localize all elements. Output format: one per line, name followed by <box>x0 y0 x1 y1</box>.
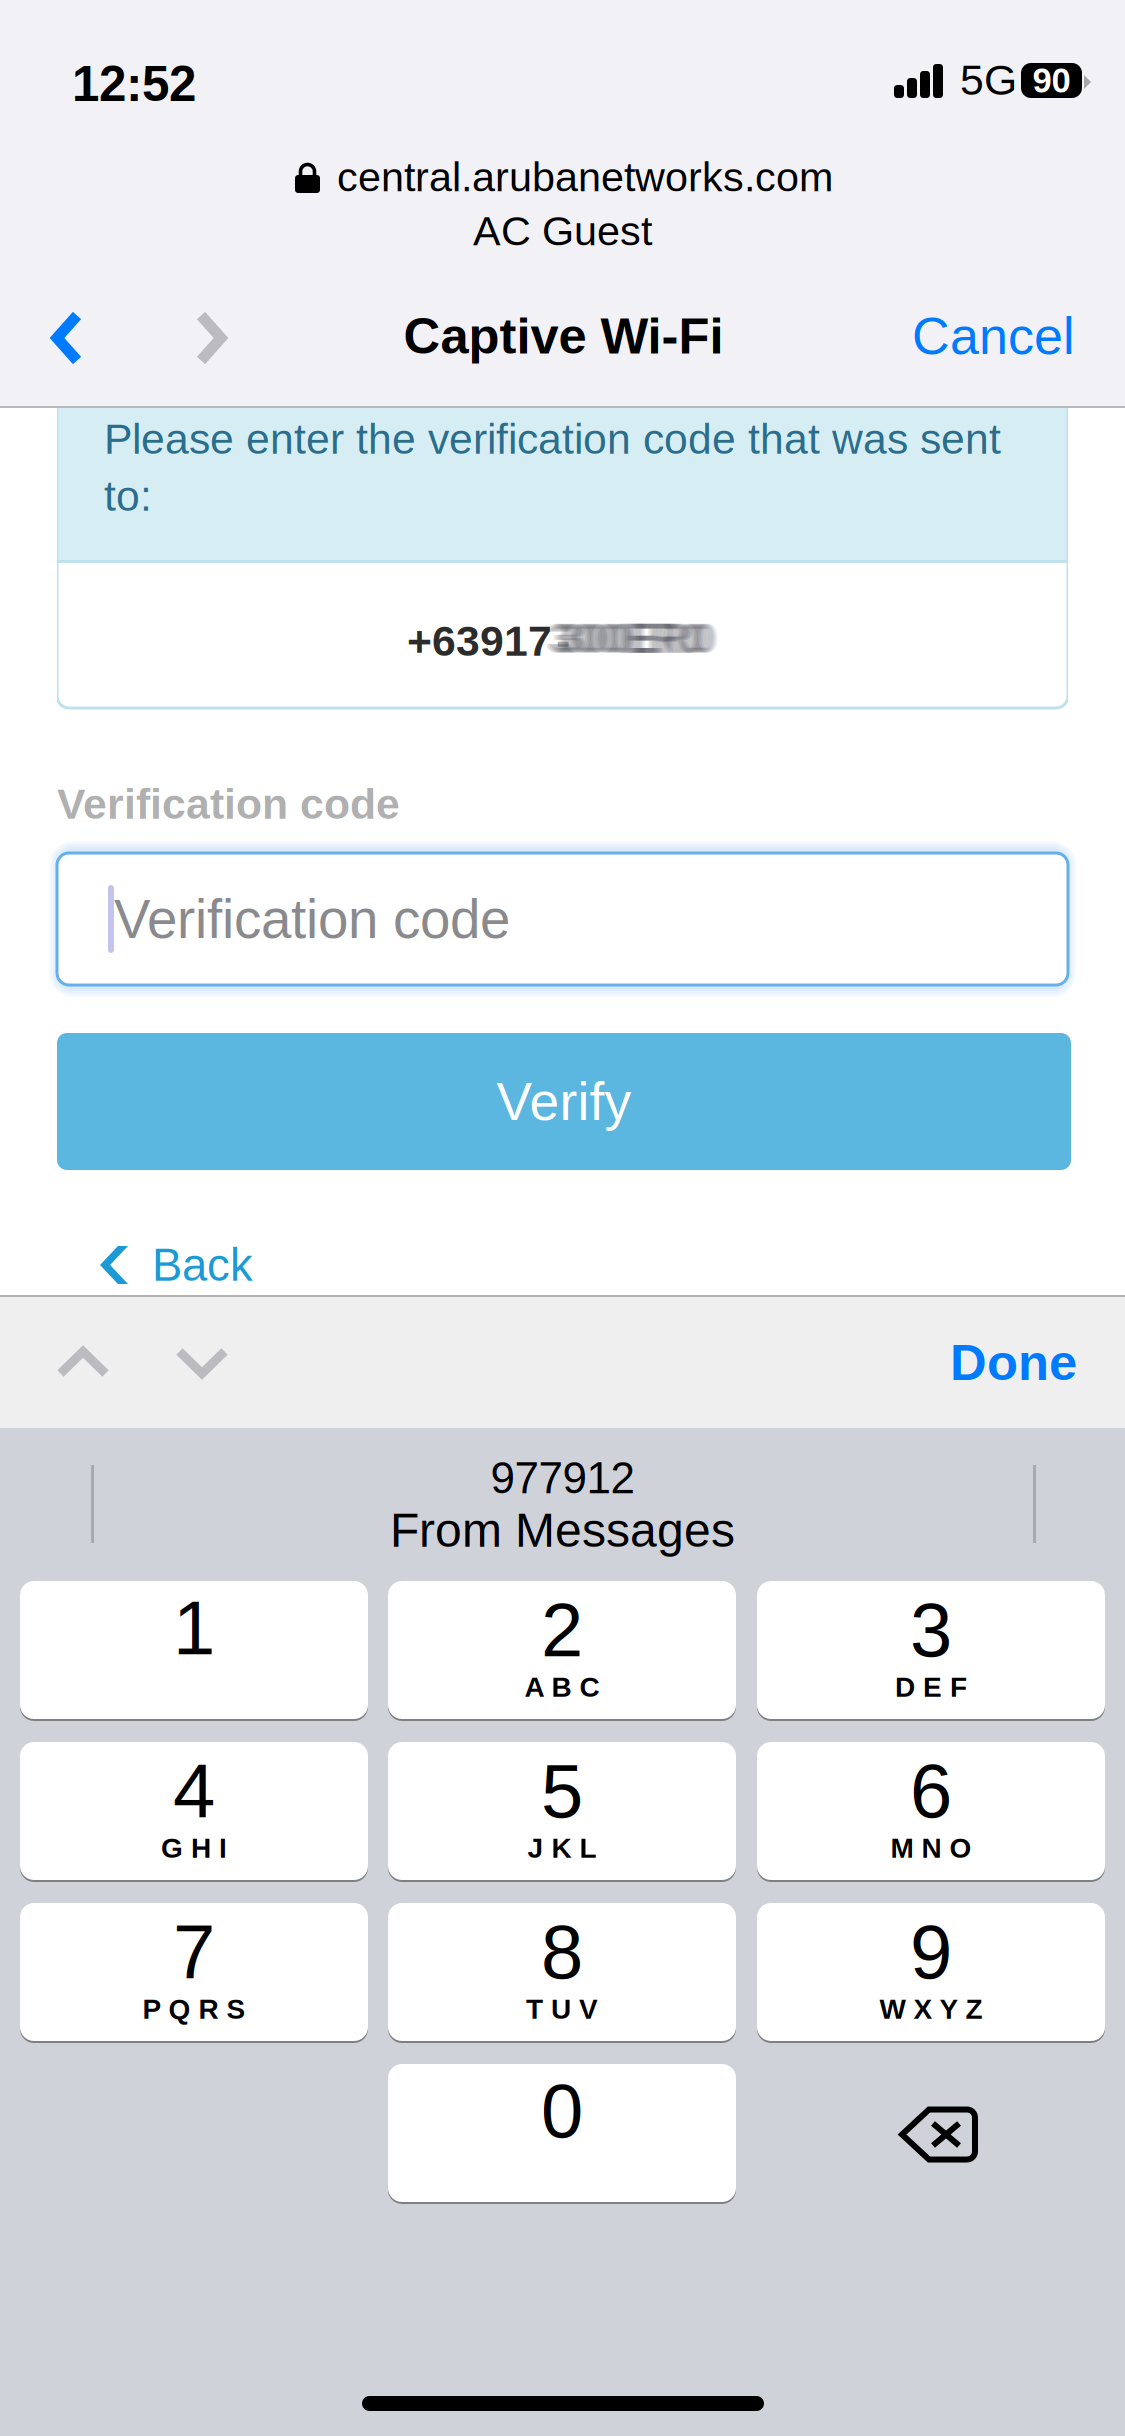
button[interactable]: Previous field <box>18 1297 148 1428</box>
button[interactable]: 6 <box>757 1742 1105 1883</box>
staticText: Captive Wi-Fi <box>403 308 723 364</box>
button[interactable]: 5 <box>388 1742 736 1883</box>
staticText: - <box>556 617 570 665</box>
staticText: 300ER0 <box>564 614 719 662</box>
staticText: 300ER0 <box>550 614 705 662</box>
staticText: 5G <box>960 56 1017 104</box>
button[interactable]: 9 <box>757 1903 1105 2044</box>
staticText: 300ER0 <box>551 614 706 662</box>
staticText: Verification code <box>57 780 400 828</box>
staticText: 6 <box>910 1748 952 1833</box>
button[interactable]: 1 <box>20 1581 368 1722</box>
staticText: 300ER0 <box>558 614 713 662</box>
button[interactable]: Next field <box>137 1297 267 1428</box>
staticText: central.arubanetworks.com <box>337 154 833 200</box>
staticText: Verification code <box>114 888 510 950</box>
staticText: 1 <box>173 1585 215 1670</box>
staticText: G H I <box>161 1832 227 1864</box>
staticText: 5 <box>541 1748 583 1833</box>
button[interactable]: 3 <box>757 1581 1105 1722</box>
staticText: 300ER0 <box>548 614 703 662</box>
button[interactable]: 8 <box>388 1903 736 2044</box>
staticText: 300ER0 <box>547 614 702 662</box>
button[interactable]: 7 <box>20 1903 368 2044</box>
staticText: Please enter the verification code that … <box>104 415 1001 463</box>
staticText: 2 <box>541 1587 583 1672</box>
staticText: M N O <box>890 1832 971 1864</box>
staticText: D E F <box>895 1671 967 1703</box>
staticText: 8 <box>541 1909 583 1994</box>
button[interactable]: Delete <box>757 2064 1105 2205</box>
staticText: 300ER0 <box>553 614 708 662</box>
button[interactable]: Back <box>0 276 135 400</box>
button[interactable]: Done <box>837 1297 1077 1428</box>
staticText: to: <box>104 472 152 520</box>
staticText: W X Y Z <box>879 1993 982 2025</box>
staticText: 7 <box>173 1909 215 1994</box>
staticText: 300ER0 <box>545 614 700 662</box>
staticText: From Messages <box>390 1503 735 1557</box>
staticText: 4 <box>173 1748 215 1833</box>
staticText: Cancel <box>912 307 1075 365</box>
button[interactable]: 0 <box>388 2064 736 2205</box>
staticText: Verify <box>496 1072 631 1131</box>
staticText: T U V <box>526 1993 598 2025</box>
staticText: 300ER0 <box>556 614 711 662</box>
staticText: 12:52 <box>72 56 196 111</box>
staticText: 300ER0 <box>563 614 718 662</box>
button[interactable]: 4 <box>20 1742 368 1883</box>
button[interactable]: Forward <box>143 276 279 400</box>
staticText: +63917 <box>407 617 552 665</box>
staticText: 300ER0 <box>561 614 716 662</box>
staticText: A B C <box>524 1671 599 1703</box>
staticText: 9 <box>910 1909 952 1994</box>
staticText: 90 <box>1032 61 1070 100</box>
button[interactable]: Verify <box>57 1033 1071 1170</box>
button[interactable]: Cancel <box>843 274 1075 398</box>
staticText: 0 <box>541 2068 583 2153</box>
staticText: Done <box>950 1334 1077 1391</box>
button[interactable]: Back <box>100 1228 320 1304</box>
staticText: P Q R S <box>142 1993 245 2025</box>
staticText: 300ER0 <box>555 614 710 662</box>
staticText: 977912 <box>490 1453 634 1503</box>
staticText: 300ER0 <box>559 614 714 662</box>
staticText: 3 <box>910 1587 952 1672</box>
staticText: J K L <box>527 1832 596 1864</box>
staticText: AC Guest <box>473 208 652 254</box>
staticText: Back <box>152 1240 253 1290</box>
button[interactable]: 2 <box>388 1581 736 1722</box>
